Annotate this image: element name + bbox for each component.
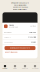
staticText: Languages: [4, 41, 13, 43]
staticText: Productivity: [28, 36, 36, 38]
staticText: Today: [2, 68, 7, 69]
button[interactable]: Download on the App Store: [4, 46, 35, 50]
button[interactable]: Search: [20, 65, 30, 69]
staticText: Download on the App Store: [10, 47, 30, 49]
button[interactable]: Account: [30, 65, 40, 69]
staticText: English: [31, 41, 36, 43]
button[interactable]: Category: [2, 35, 37, 40]
staticText: Anthropic: [29, 31, 36, 33]
button[interactable]: Today: [0, 65, 10, 69]
staticText: Account: [32, 68, 38, 69]
staticText: Report a fake app: [4, 51, 17, 53]
staticText: Search: [22, 68, 28, 69]
staticText: Apps: [13, 68, 17, 69]
staticText: App Store or claude.ai.: [12, 6, 27, 8]
staticText: Official Anthropic apps are: [11, 2, 29, 4]
staticText: by Anthropic: [9, 26, 18, 28]
staticText: Verified: [30, 25, 36, 27]
button[interactable]: Languages: [2, 40, 37, 45]
button[interactable]: Developer: [2, 30, 37, 35]
button[interactable]: Apps: [10, 65, 20, 69]
button[interactable]: Report a fake app: [4, 51, 17, 53]
staticText: Beware of look-alikes.: [13, 9, 27, 10]
staticText: Developer: [4, 31, 12, 33]
staticText: Category: [4, 36, 11, 38]
staticText: Claude: [9, 24, 14, 26]
staticText: only available via the: [13, 4, 26, 6]
